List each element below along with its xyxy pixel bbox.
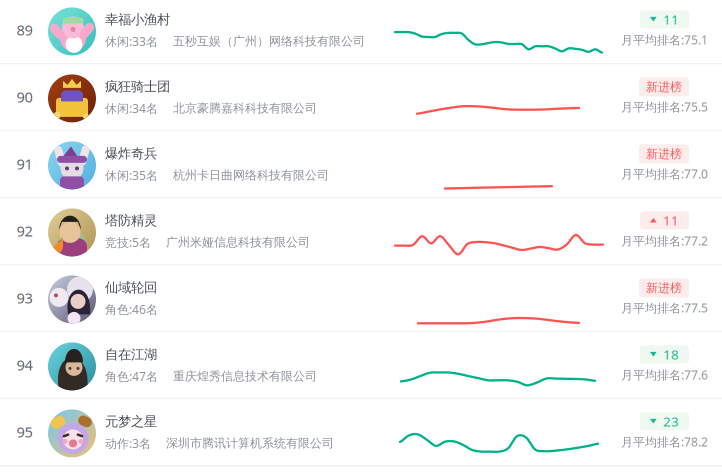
staticText: 竞技:5名 <box>105 234 151 250</box>
staticText: 月平均排名:75.1 <box>621 32 708 48</box>
staticText: 11 <box>663 10 679 28</box>
staticText: 95 <box>16 422 32 442</box>
staticText: 角色:46名 <box>105 301 158 317</box>
staticText: 月平均排名:78.2 <box>621 434 708 450</box>
staticText: 仙域轮回 <box>105 279 157 296</box>
staticText: 自在江湖 <box>105 346 157 363</box>
staticText: 93 <box>16 288 32 308</box>
staticText: 92 <box>16 221 32 241</box>
staticText: 月平均排名:77.0 <box>621 166 708 182</box>
staticText: 疯狂骑士团 <box>105 78 170 95</box>
staticText: 月平均排名:75.5 <box>621 99 708 115</box>
button[interactable]: 89 <box>0 0 722 64</box>
staticText: 月平均排名:77.6 <box>621 367 708 383</box>
button[interactable]: 94 <box>0 332 722 399</box>
staticText: 动作:3名 <box>105 435 151 451</box>
staticText: 23 <box>663 412 679 430</box>
staticText: 11 <box>663 211 679 229</box>
staticText: 爆炸奇兵 <box>105 145 157 162</box>
staticText: 月平均排名:77.5 <box>621 300 708 316</box>
staticText: 五秒互娱（广州）网络科技有限公司 <box>173 34 365 49</box>
staticText: 新进榜 <box>646 280 682 295</box>
staticText: 北京豪腾嘉科科技有限公司 <box>173 101 317 116</box>
button[interactable]: 93 <box>0 265 722 332</box>
staticText: 角色:47名 <box>105 368 158 384</box>
button[interactable]: 95 <box>0 399 722 466</box>
staticText: 新进榜 <box>646 79 682 94</box>
staticText: 休闲:33名 <box>105 33 158 49</box>
staticText: 月平均排名:77.2 <box>621 233 708 249</box>
staticText: 94 <box>16 355 32 375</box>
button[interactable]: 92 <box>0 198 722 265</box>
staticText: 塔防精灵 <box>105 212 157 229</box>
staticText: 90 <box>16 87 32 107</box>
staticText: 广州米娅信息科技有限公司 <box>166 235 310 250</box>
staticText: 重庆煌秀信息技术有限公司 <box>173 369 317 384</box>
staticText: 91 <box>16 154 32 174</box>
staticText: 89 <box>16 20 32 40</box>
staticText: 18 <box>663 345 679 363</box>
staticText: 幸福小渔村 <box>105 11 170 28</box>
staticText: 新进榜 <box>646 146 682 161</box>
staticText: 深圳市腾讯计算机系统有限公司 <box>166 436 334 451</box>
staticText: 元梦之星 <box>105 413 157 430</box>
staticText: 休闲:34名 <box>105 100 158 116</box>
staticText: 杭州卡日曲网络科技有限公司 <box>173 168 329 183</box>
button[interactable]: 90 <box>0 64 722 131</box>
button[interactable]: 91 <box>0 131 722 198</box>
staticText: 休闲:35名 <box>105 167 158 183</box>
